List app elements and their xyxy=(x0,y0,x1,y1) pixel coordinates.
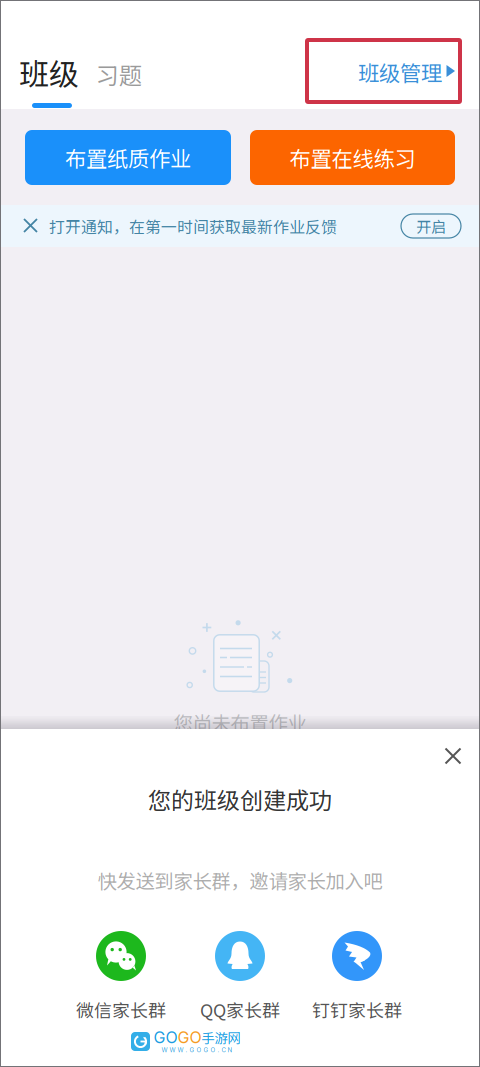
button[interactable]: 关闭 xyxy=(431,734,475,778)
staticText: 布置在线练习 xyxy=(289,142,415,173)
button[interactable]: 习题 xyxy=(96,60,152,88)
button[interactable]: 微信家长群 xyxy=(62,931,180,1021)
staticText: 习题 xyxy=(96,57,142,91)
staticText: 班级管理 xyxy=(358,57,442,87)
button[interactable]: 开启 xyxy=(401,214,461,238)
staticText: 开启 xyxy=(416,215,446,237)
button[interactable]: 钉钉家长群 xyxy=(298,931,416,1021)
button[interactable]: 关闭通知提示 xyxy=(24,219,37,232)
staticText: 您的班级创建成功 xyxy=(148,782,332,816)
staticText: 微信家长群 xyxy=(76,997,166,1022)
staticText: 班级 xyxy=(19,50,79,94)
staticText: 布置纸质作业 xyxy=(65,142,191,173)
staticText: 打开通知，在第一时间获取最新作业反馈 xyxy=(49,214,337,237)
staticText: 快发送到家长群，邀请家长加入吧 xyxy=(97,866,382,894)
staticText: GO xyxy=(153,1028,177,1047)
button[interactable]: 班级 xyxy=(19,53,89,91)
button[interactable]: 班级管理 xyxy=(305,38,462,104)
staticText: QQ家长群 xyxy=(200,997,280,1022)
staticText: 钉钉家长群 xyxy=(312,997,402,1022)
button[interactable]: 布置在线练习 xyxy=(250,130,455,185)
staticText: 手游网 xyxy=(201,1028,240,1047)
staticText: W W W . G O G O . C N xyxy=(161,1046,232,1054)
staticText: 您尚未布置作业 xyxy=(173,708,306,736)
button[interactable]: QQ家长群 xyxy=(181,931,299,1021)
staticText: GO xyxy=(177,1028,201,1047)
button[interactable]: 布置纸质作业 xyxy=(25,130,231,185)
